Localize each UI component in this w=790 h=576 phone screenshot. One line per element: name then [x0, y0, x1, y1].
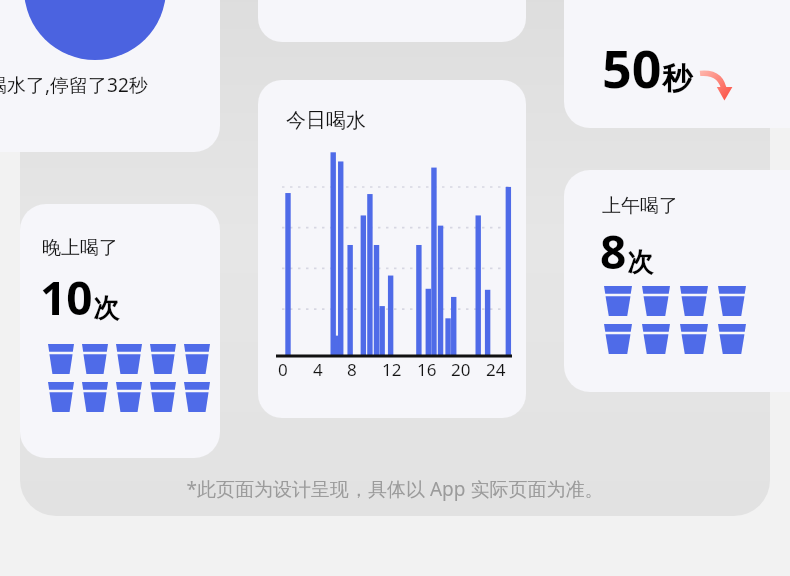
staticText: 24 — [486, 358, 510, 381]
staticText: 16 — [417, 358, 441, 381]
button[interactable]: 上午喝了 — [564, 170, 790, 392]
staticText: 12 — [382, 358, 406, 381]
staticText: 上午喝了 — [602, 194, 678, 218]
staticText: *此页面为设计呈现，具体以 App 实际页面为准。 — [0, 476, 790, 502]
staticText: 20 — [451, 358, 475, 381]
staticText: 喝水了,停留了32秒 — [0, 72, 148, 98]
button[interactable] — [258, 0, 526, 42]
staticText: 8 — [347, 358, 371, 381]
button[interactable]: Drink timer — [0, 0, 220, 152]
button[interactable]: 晚上喝了 — [20, 204, 220, 458]
staticText: 50 — [602, 32, 662, 103]
staticText: 8 — [600, 220, 627, 283]
other: Decrease — [698, 63, 738, 103]
staticText: 次 — [93, 292, 119, 325]
staticText: 次 — [627, 246, 653, 279]
button[interactable]: 今日喝水 — [258, 80, 526, 418]
other: Drink timer — [24, 0, 166, 60]
staticText: 晚上喝了 — [42, 236, 118, 260]
button[interactable]: 50 — [564, 0, 790, 128]
staticText: 今日喝水 — [286, 108, 366, 133]
staticText: 秒 — [662, 60, 692, 98]
staticText: 0 — [278, 358, 302, 381]
staticText: 10 — [40, 266, 93, 329]
staticText: 4 — [313, 358, 337, 381]
